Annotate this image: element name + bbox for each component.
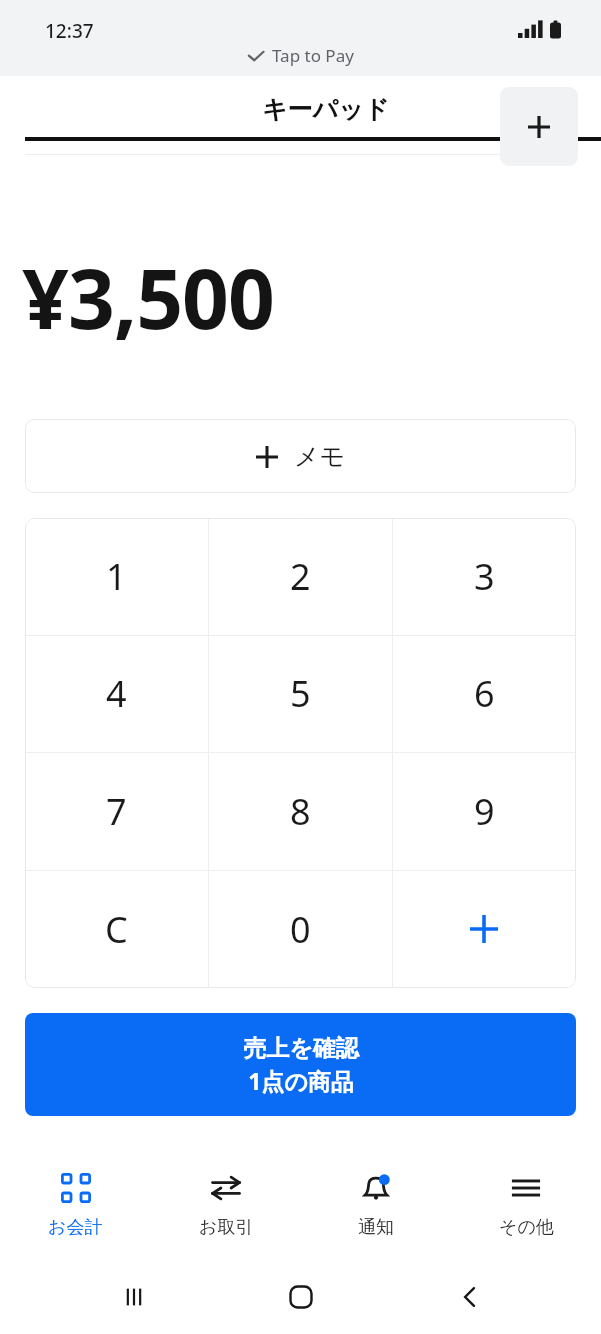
button[interactable]: 通知 (301, 1150, 451, 1260)
button[interactable]: Back (444, 1271, 496, 1323)
staticText: お会計 (48, 1216, 103, 1239)
staticText: 2 (290, 552, 311, 601)
button[interactable]: 9 (392, 752, 576, 870)
staticText: その他 (499, 1216, 554, 1239)
staticText: 6 (474, 669, 495, 718)
staticText: 5 (290, 669, 311, 718)
staticText: メモ (294, 441, 346, 472)
button[interactable]: 8 (208, 752, 392, 870)
button[interactable]: 2 (208, 518, 392, 635)
staticText: 1 (106, 552, 127, 601)
staticText: 3 (474, 552, 495, 601)
staticText: キーパッド (262, 94, 390, 125)
staticText: お取引 (199, 1216, 254, 1239)
staticText: 4 (106, 669, 127, 718)
button[interactable]: 3 (392, 518, 576, 635)
button[interactable]: 0 (208, 870, 392, 988)
button[interactable]: お会計 (0, 1150, 151, 1260)
staticText: 12:37 (45, 18, 94, 44)
button[interactable]: 5 (208, 635, 392, 752)
button[interactable]: 6 (392, 635, 576, 752)
button[interactable]: 売上を確認 (25, 1013, 576, 1116)
staticText: 7 (106, 787, 127, 836)
button[interactable]: Recent apps (108, 1271, 160, 1323)
button[interactable]: C (25, 870, 208, 988)
button[interactable]: Add (500, 87, 578, 166)
button[interactable]: 1 (25, 518, 208, 635)
button[interactable]: お取引 (151, 1150, 301, 1260)
staticText: 1点の商品 (248, 1065, 354, 1096)
staticText: 通知 (358, 1216, 394, 1239)
staticText: 売上を確認 (243, 1034, 359, 1063)
button[interactable]: メモ (25, 419, 576, 493)
button[interactable]: Home (275, 1271, 327, 1323)
staticText: C (105, 905, 128, 954)
staticText: 9 (474, 787, 495, 836)
staticText: Tap to Pay (272, 44, 354, 67)
staticText: 8 (290, 787, 311, 836)
staticText: 0 (290, 905, 311, 954)
staticText: ¥3,500 (22, 241, 601, 353)
button[interactable]: キーパッド (25, 94, 601, 143)
button[interactable]: 4 (25, 635, 208, 752)
button[interactable] (392, 870, 576, 988)
button[interactable]: その他 (451, 1150, 601, 1260)
button[interactable]: 7 (25, 752, 208, 870)
